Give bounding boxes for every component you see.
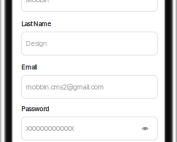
button[interactable]: Mobbin [21,0,157,11]
staticText: XXXXXXXXXXXX [26,124,74,133]
button[interactable]: XXXXXXXXXXXX [21,117,157,140]
staticText: Last Name [21,20,51,28]
staticText: Password [21,105,49,113]
staticText: Mobbin [26,0,49,4]
button[interactable]: Design [21,32,157,55]
staticText: Email [21,63,36,71]
staticText: mobbin.cms2@gmail.com [26,83,104,91]
staticText: Design [26,39,47,48]
button[interactable]: mobbin.cms2@gmail.com [21,75,157,99]
